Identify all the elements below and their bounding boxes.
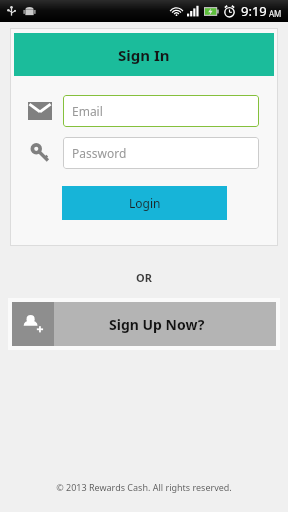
staticText: Password	[72, 145, 127, 161]
staticText: © 2013 Rewards Cash. All rights reserved…	[0, 481, 288, 493]
button[interactable]: Sign In	[14, 33, 274, 76]
button[interactable]: Password	[63, 137, 259, 169]
other: Sign up	[12, 302, 54, 346]
staticText: 9:19	[241, 2, 267, 20]
staticText: AM	[269, 8, 282, 19]
staticText: Email	[72, 103, 103, 119]
staticText: OR	[0, 270, 288, 285]
button[interactable]: Login	[62, 186, 227, 220]
button[interactable]: Email	[63, 95, 259, 127]
staticText: Sign Up Now?	[109, 315, 205, 334]
staticText: Sign In	[118, 45, 170, 65]
button[interactable]: Sign up	[8, 298, 280, 350]
staticText: Login	[129, 195, 161, 211]
